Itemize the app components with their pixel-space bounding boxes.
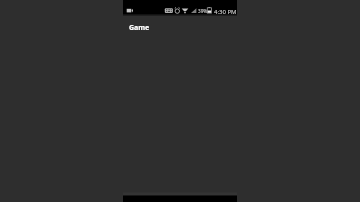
staticText: 39% (198, 8, 208, 14)
staticText: 4:30 PM (214, 8, 237, 16)
staticText: Game (129, 23, 150, 33)
button[interactable]: Game (129, 23, 150, 33)
